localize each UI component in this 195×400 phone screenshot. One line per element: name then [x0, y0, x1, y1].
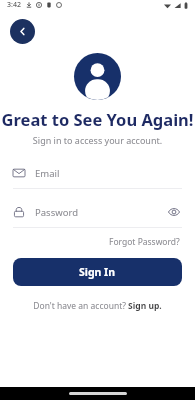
- button[interactable]: Password: [13, 202, 182, 222]
- button[interactable]: Forgot Password?: [107, 234, 182, 250]
- staticText: 3:42: [7, 0, 21, 10]
- staticText: Forgot Password?: [109, 236, 180, 248]
- staticText: Sign In: [79, 265, 116, 279]
- staticText: Sign in to access your account.: [0, 134, 195, 146]
- button[interactable]: Back: [10, 19, 35, 44]
- button[interactable]: Email: [13, 163, 182, 183]
- button[interactable]: Show password: [166, 204, 182, 220]
- staticText: Don't have an account? Sign up.: [33, 300, 162, 312]
- button[interactable]: Sign In: [13, 258, 182, 286]
- staticText: Email: [35, 167, 60, 180]
- button[interactable]: Don't have an account? Sign up.: [30, 297, 165, 315]
- staticText: Password: [35, 206, 78, 219]
- staticText: Great to See You Again!: [0, 108, 195, 130]
